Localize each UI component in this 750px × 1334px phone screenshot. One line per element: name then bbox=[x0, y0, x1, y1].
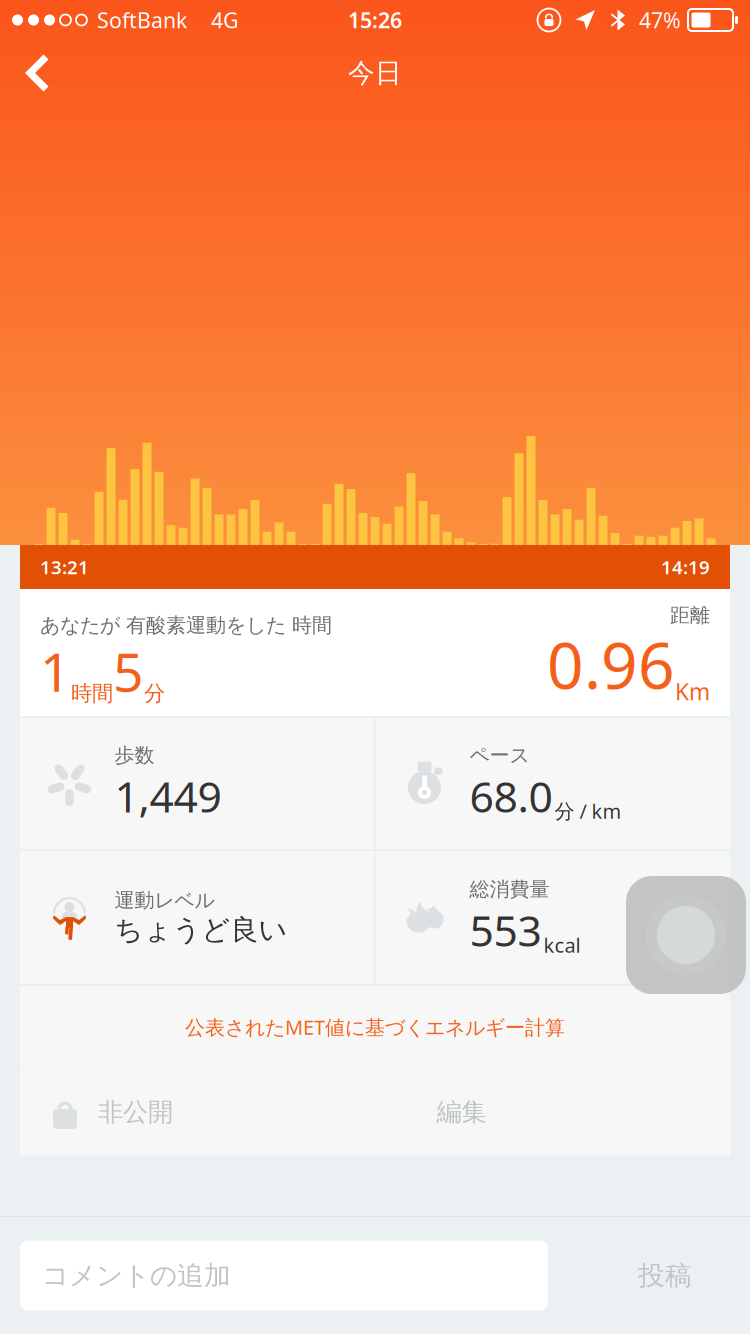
button[interactable]: 編集 bbox=[396, 1069, 526, 1156]
staticText: ペース bbox=[469, 743, 529, 767]
staticText: 運動レベル bbox=[114, 888, 214, 913]
staticText: ちょうど良い bbox=[114, 913, 287, 947]
staticText: 非公開 bbox=[98, 1096, 173, 1128]
staticText: 分 bbox=[144, 680, 165, 707]
staticText: 総消費量 bbox=[469, 877, 549, 901]
staticText: コメントの追加 bbox=[42, 1259, 231, 1292]
staticText: 1 bbox=[40, 636, 71, 706]
staticText: 投稿 bbox=[638, 1259, 692, 1292]
staticText: 時間 bbox=[71, 680, 113, 707]
staticText: 13:21 bbox=[40, 555, 89, 579]
staticText: kcal bbox=[543, 932, 580, 958]
staticText: 0.96 bbox=[547, 622, 675, 707]
staticText: SoftBank bbox=[97, 6, 187, 34]
staticText: 14:19 bbox=[661, 555, 710, 579]
button[interactable]: コメントの追加 bbox=[20, 1240, 548, 1310]
staticText: 553 bbox=[469, 901, 541, 958]
staticText: 15:26 bbox=[348, 6, 402, 34]
staticText: 編集 bbox=[436, 1096, 486, 1128]
button[interactable]: AssistiveTouch bbox=[626, 876, 746, 994]
button[interactable]: 非公開 bbox=[20, 1069, 193, 1156]
staticText: あなたが 有酸素運動をした 時間 bbox=[40, 613, 332, 638]
staticText: 歩数 bbox=[114, 743, 154, 767]
staticText: 今日 bbox=[348, 57, 402, 89]
staticText: 4G bbox=[187, 6, 239, 34]
staticText: 公表されたMET値に基づくエネルギー計算 bbox=[185, 1014, 565, 1040]
button[interactable]: 投稿 bbox=[600, 1240, 730, 1310]
staticText: 1,449 bbox=[114, 767, 221, 824]
staticText: 距離 bbox=[670, 603, 710, 628]
staticText: 5 bbox=[113, 636, 144, 706]
staticText: 分 / km bbox=[554, 798, 621, 824]
staticText: 47% bbox=[639, 6, 681, 34]
staticText: 68.0 bbox=[469, 767, 552, 824]
staticText: Km bbox=[675, 676, 710, 707]
button[interactable]: Back bbox=[0, 40, 74, 106]
